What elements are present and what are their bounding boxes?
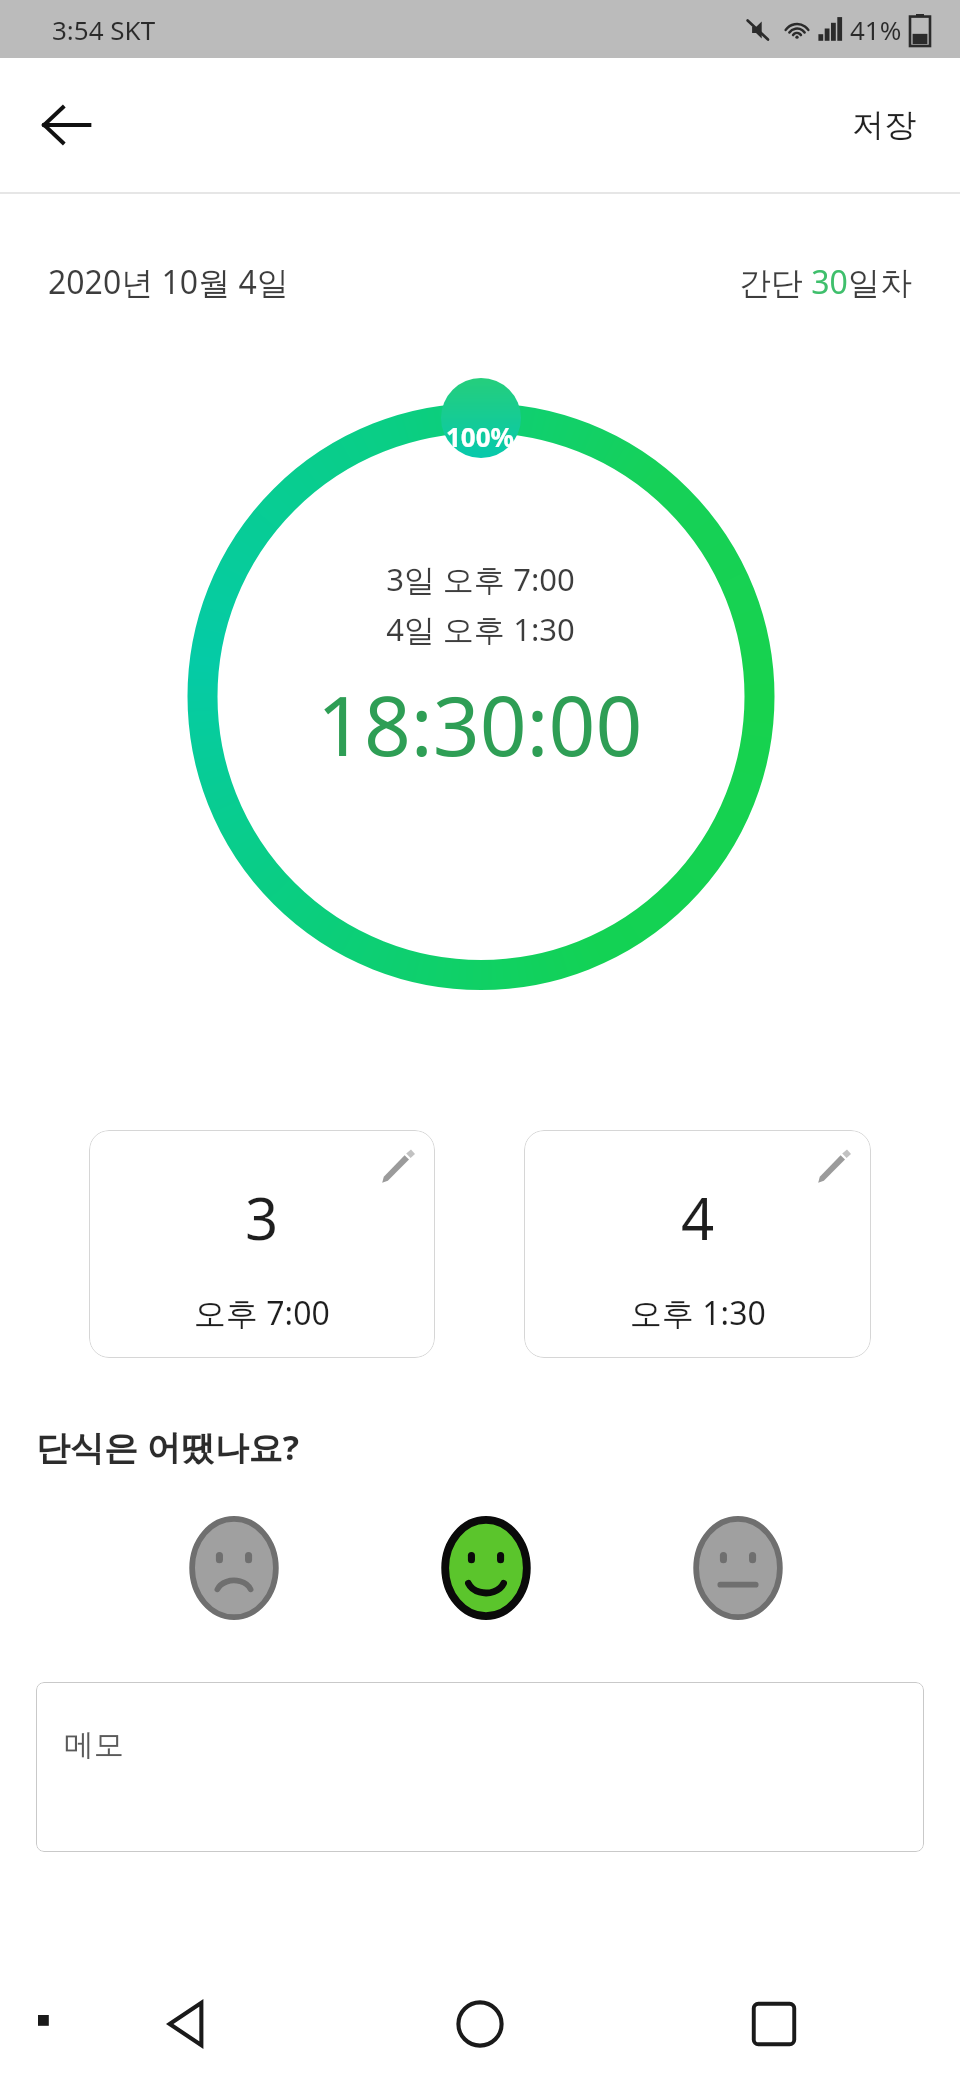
button[interactable]: 좋아요 — [432, 1514, 540, 1622]
button[interactable]: 저장 — [832, 91, 936, 159]
staticText: 3 — [245, 1178, 279, 1257]
staticText: 저장 — [852, 105, 916, 145]
staticText: 41% — [850, 12, 902, 47]
button[interactable]: 아쉬워요 — [180, 1514, 288, 1622]
staticText: 3일 오후 7:00 — [386, 558, 575, 600]
staticText: 18:30:00 — [317, 668, 643, 780]
staticText: 단식은 어땠나요? — [36, 1424, 300, 1470]
button[interactable]: 뒤로 — [140, 1978, 232, 2070]
staticText: 2020년 10월 4일 — [48, 260, 289, 304]
staticText: 100% — [446, 419, 515, 454]
button[interactable]: 홈 — [434, 1978, 526, 2070]
button[interactable]: 3 — [89, 1130, 435, 1358]
staticText: 3:54 SKT — [52, 12, 156, 47]
button[interactable]: 보통이에요 — [684, 1514, 792, 1622]
button[interactable]: 4 — [524, 1130, 871, 1358]
staticText: 메모 — [64, 1726, 124, 1764]
staticText: 간단 30일차 — [739, 260, 912, 304]
staticText: 4일 오후 1:30 — [386, 608, 575, 650]
button[interactable]: 최근 앱 — [728, 1978, 820, 2070]
staticText: 오후 1:30 — [630, 1291, 766, 1335]
button[interactable]: 뒤로 가기 — [24, 83, 108, 167]
staticText: 오후 7:00 — [194, 1291, 330, 1335]
staticText: 4 — [681, 1178, 715, 1257]
button[interactable]: 메모 — [36, 1682, 924, 1852]
